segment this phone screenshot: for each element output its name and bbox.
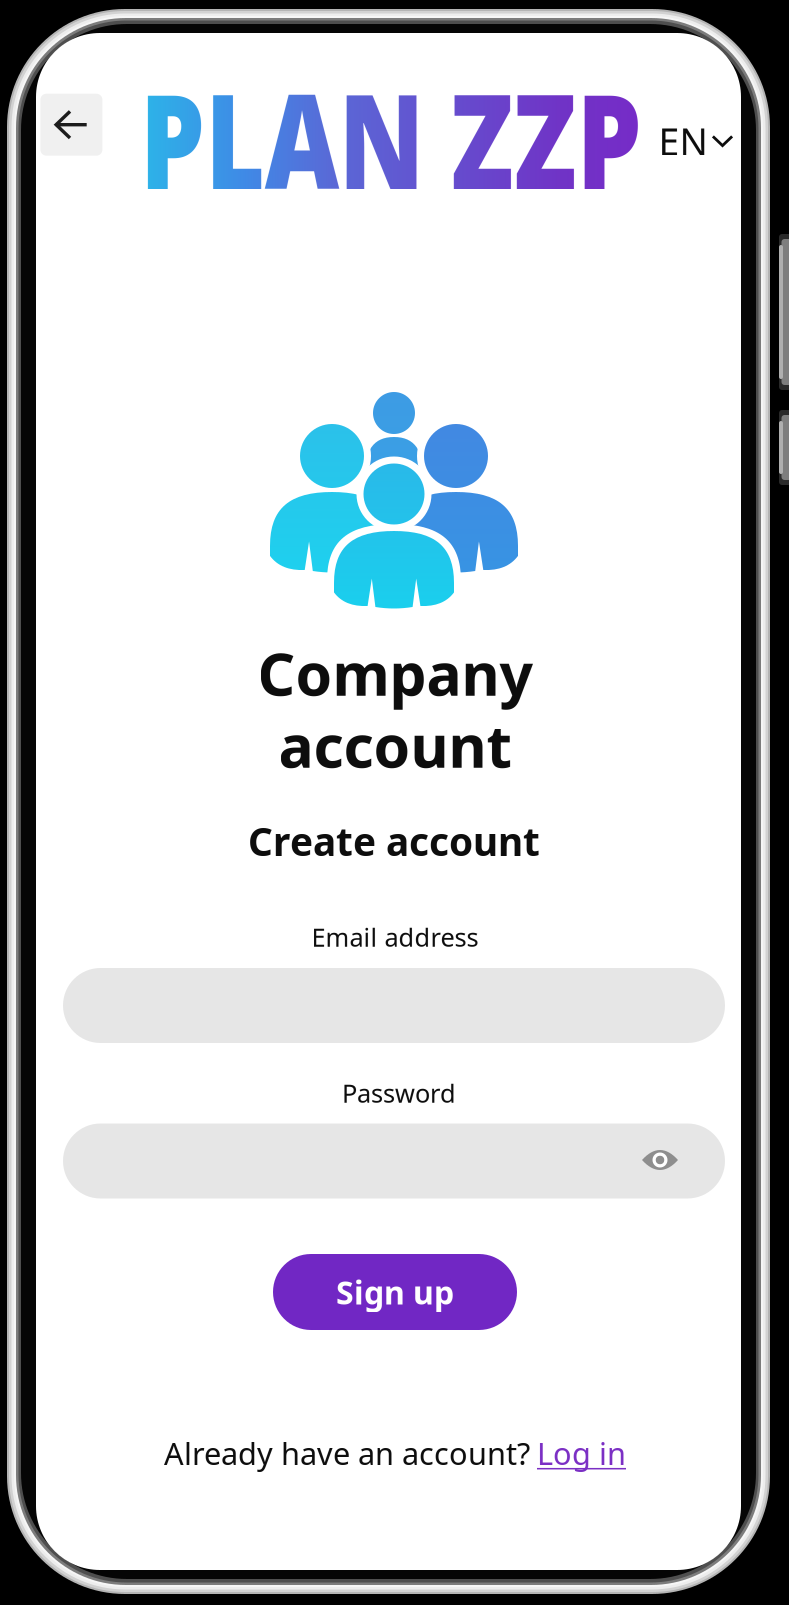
staticText: account (278, 706, 511, 784)
staticText: Already have an account? (164, 1433, 530, 1473)
staticText: Password (342, 1076, 456, 1110)
staticText: EN (658, 116, 707, 166)
button[interactable]: EN (658, 116, 733, 166)
button[interactable]: Sign up (273, 1254, 517, 1330)
staticText: Company (257, 634, 532, 712)
staticText: Log in (537, 1433, 626, 1473)
staticText: Email address (311, 920, 478, 954)
button[interactable]: Back (40, 94, 102, 156)
staticText: Sign up (336, 1271, 454, 1313)
staticText: Create account (248, 815, 540, 867)
button[interactable]: Log in (537, 1433, 626, 1473)
button[interactable]: Show password (641, 1150, 678, 1170)
